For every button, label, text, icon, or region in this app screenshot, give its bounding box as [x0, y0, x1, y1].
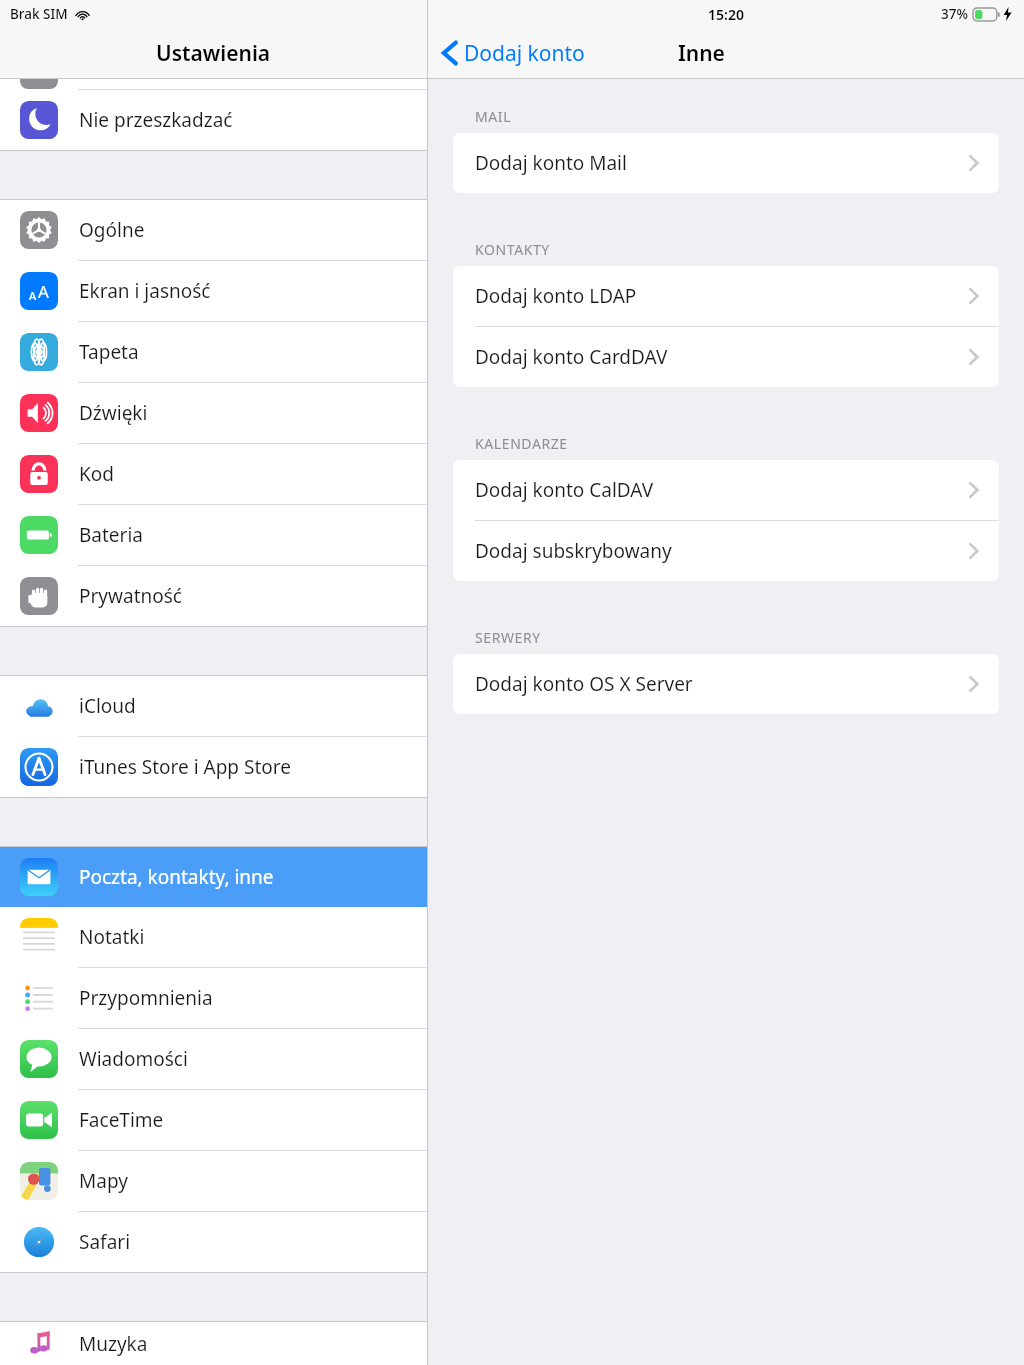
button[interactable]: FaceTime: [0, 1090, 427, 1150]
staticText: FaceTime: [79, 1107, 164, 1133]
button[interactable]: Muzyka: [0, 1322, 427, 1365]
button[interactable]: Dodaj konto: [428, 28, 595, 78]
button[interactable]: Kod: [0, 444, 427, 504]
button[interactable]: Notatki: [0, 907, 427, 967]
button[interactable]: Dodaj konto LDAP: [453, 266, 999, 326]
staticText: Wiadomości: [79, 1046, 188, 1072]
staticText: Safari: [79, 1229, 131, 1255]
staticText: MAIL: [475, 107, 512, 126]
staticText: Poczta, kontakty, inne: [79, 864, 274, 890]
staticText: 15:20: [708, 5, 744, 24]
button[interactable]: Safari: [0, 1212, 427, 1272]
staticText: Dodaj subskrybowany: [475, 538, 965, 564]
staticText: Dodaj konto OS X Server: [475, 671, 965, 697]
staticText: Dodaj konto LDAP: [475, 283, 965, 309]
button[interactable]: Przypomnienia: [0, 968, 427, 1028]
button[interactable]: Tapeta: [0, 322, 427, 382]
button[interactable]: Dodaj konto CardDAV: [453, 327, 999, 387]
staticText: Mapy: [79, 1168, 128, 1194]
staticText: iCloud: [79, 693, 136, 719]
staticText: Ogólne: [79, 217, 145, 243]
staticText: Dodaj konto CardDAV: [475, 344, 965, 370]
staticText: KALENDARZE: [475, 434, 568, 453]
button[interactable]: Mapy: [0, 1151, 427, 1211]
staticText: Kod: [79, 461, 114, 487]
staticText: KONTAKTY: [475, 240, 550, 259]
button[interactable]: Bateria: [0, 505, 427, 565]
button[interactable]: Ogólne: [0, 200, 427, 260]
staticText: 37%: [941, 5, 968, 23]
staticText: Ekran i jasność: [79, 278, 211, 304]
staticText: Muzyka: [79, 1331, 148, 1357]
button[interactable]: Wiadomości: [0, 1029, 427, 1089]
staticText: Ustawienia: [156, 39, 271, 68]
staticText: Inne: [678, 39, 725, 68]
staticText: Notatki: [79, 924, 145, 950]
staticText: Prywatność: [79, 583, 182, 609]
button[interactable]: Dodaj konto CalDAV: [453, 460, 999, 520]
button[interactable]: iTunes Store i App Store: [0, 737, 427, 797]
staticText: Dodaj konto Mail: [475, 150, 965, 176]
button[interactable]: Nie przeszkadzać: [0, 90, 427, 150]
button[interactable]: Dodaj subskrybowany: [453, 521, 999, 581]
staticText: Dodaj konto: [464, 39, 585, 68]
staticText: Dodaj konto CalDAV: [475, 477, 965, 503]
staticText: Tapeta: [79, 339, 139, 365]
staticText: Przypomnienia: [79, 985, 213, 1011]
staticText: A: [29, 288, 37, 303]
button[interactable]: Dźwięki: [0, 383, 427, 443]
staticText: Dźwięki: [79, 400, 148, 426]
staticText: Nie przeszkadzać: [79, 107, 233, 133]
staticText: iTunes Store i App Store: [79, 754, 291, 780]
staticText: SERWERY: [475, 628, 541, 647]
staticText: Brak SIM: [10, 5, 68, 23]
button[interactable]: Poczta, kontakty, inne: [0, 847, 427, 907]
button[interactable]: Dodaj konto Mail: [453, 133, 999, 193]
button[interactable]: Prywatność: [0, 566, 427, 626]
button[interactable]: A: [0, 261, 427, 321]
staticText: Bateria: [79, 522, 143, 548]
button[interactable]: Dodaj konto OS X Server: [453, 654, 999, 714]
button[interactable]: iCloud: [0, 676, 427, 736]
staticText: A: [38, 280, 49, 303]
